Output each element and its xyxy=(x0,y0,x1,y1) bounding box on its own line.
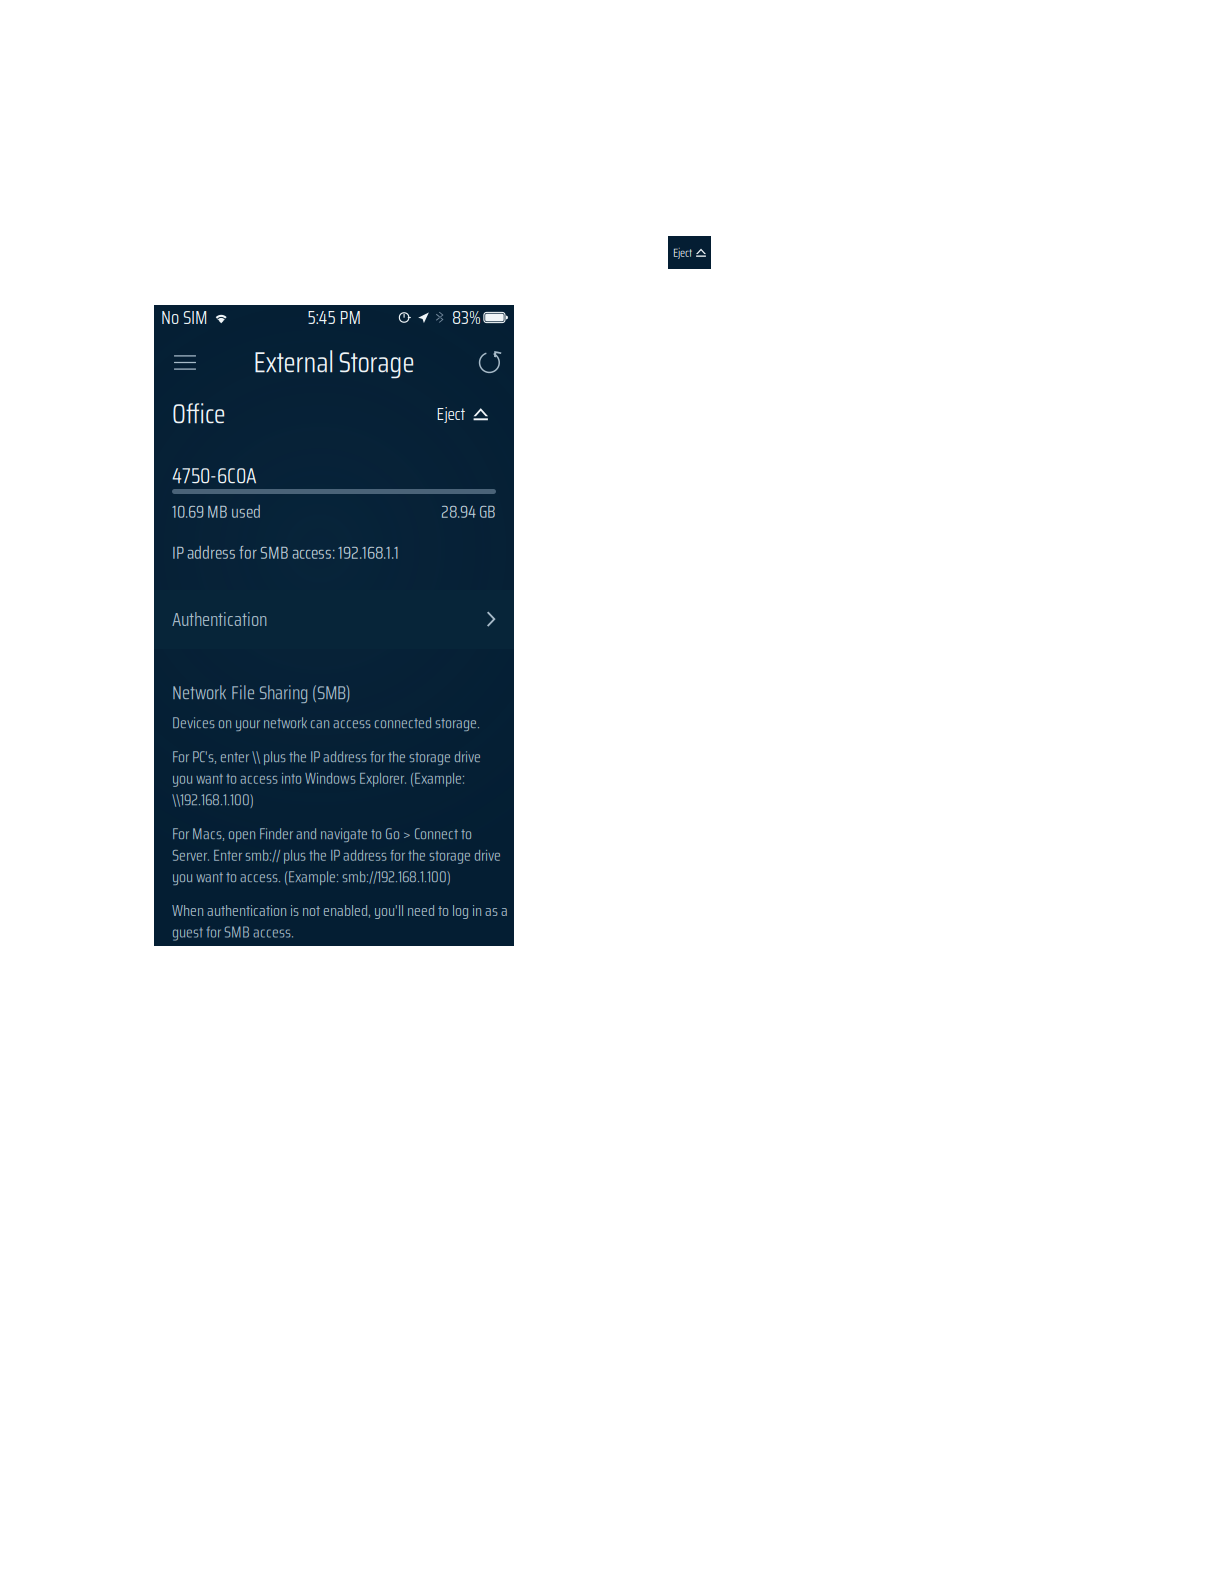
staticText: When authentication is not enabled, you'… xyxy=(172,898,508,923)
staticText: For Macs, open Finder and navigate to Go… xyxy=(172,821,472,846)
staticText: Server. Enter smb:// plus the IP address… xyxy=(172,843,501,868)
staticText: Devices on your network can access conne… xyxy=(172,710,480,735)
staticText: 5:45 PM xyxy=(307,303,360,332)
staticText: For PC's, enter \\ plus the IP address f… xyxy=(172,744,481,769)
staticText: External Storage xyxy=(253,340,414,385)
button[interactable]: Authentication xyxy=(154,590,514,649)
staticText: guest for SMB access. xyxy=(172,920,294,944)
staticText: 28.94 GB xyxy=(441,498,496,525)
staticText: No SIM xyxy=(161,303,207,332)
staticText: you want to access. (Example: smb://192.… xyxy=(172,864,451,889)
staticText: \\192.168.1.100) xyxy=(172,787,254,812)
staticText: 10.69 MB used xyxy=(172,498,261,525)
button[interactable]: Eject xyxy=(436,393,496,435)
staticText: 4750-6C0A xyxy=(172,459,257,493)
staticText: Network File Sharing (SMB) xyxy=(172,678,351,707)
staticText: Eject xyxy=(673,243,692,262)
button[interactable]: Eject xyxy=(668,236,711,269)
staticText: 83% xyxy=(452,303,481,332)
button[interactable]: Menu xyxy=(165,342,205,382)
staticText: Authentication xyxy=(172,605,267,634)
staticText: Eject xyxy=(436,400,465,428)
staticText: IP address for SMB access: 192.168.1.1 xyxy=(172,539,399,566)
staticText: Office xyxy=(172,393,225,435)
button[interactable]: Refresh xyxy=(472,342,503,383)
staticText: you want to access into Windows Explorer… xyxy=(172,766,465,791)
